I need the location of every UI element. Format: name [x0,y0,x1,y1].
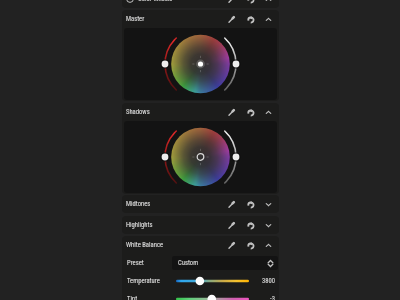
staticText: Highlights [126,221,153,229]
staticText: Master [126,15,145,23]
staticText: Temperature [127,277,160,285]
button[interactable]: Reset [245,220,256,231]
button[interactable] [176,275,249,287]
button[interactable]: Expand [263,220,274,231]
button[interactable]: Pick colour [226,240,237,251]
staticText: 3800 [249,277,275,285]
button[interactable]: Collapse [263,240,274,251]
button[interactable]: Pick colour [226,14,237,25]
staticText: Tint [127,295,138,300]
button[interactable] [176,293,249,300]
button[interactable]: Midtones [122,195,279,213]
staticText: Shadows [126,108,150,116]
staticText: Color Wheels [138,0,173,3]
button[interactable]: Pick colour [226,199,237,210]
staticText: Midtones [126,200,151,208]
staticText: -3 [249,295,275,300]
button[interactable]: Pick colour [226,0,237,5]
button[interactable]: Preset [122,254,279,272]
button[interactable]: Reset [245,199,256,210]
button[interactable]: Reset [245,240,256,251]
button[interactable]: Color Wheels [122,0,279,8]
button[interactable]: Pick colour [226,107,237,118]
button[interactable]: Reset [245,107,256,118]
button[interactable]: Collapse [263,14,274,25]
staticText: Preset [127,259,144,267]
button[interactable]: Collapse [263,0,274,5]
button[interactable]: Collapse [263,107,274,118]
button[interactable]: Highlights [122,216,279,234]
staticText: Custom [178,259,199,267]
button[interactable]: Pick colour [226,220,237,231]
button[interactable]: Expand [263,199,274,210]
button[interactable]: Reset [245,0,256,5]
button[interactable]: Reset [245,14,256,25]
staticText: White Balance [126,241,164,249]
